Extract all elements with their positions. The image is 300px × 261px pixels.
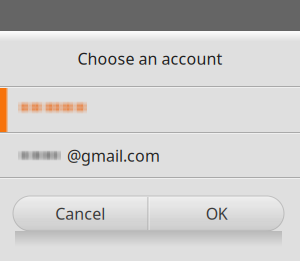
button[interactable]: OK <box>149 196 284 231</box>
staticText: OK <box>206 203 228 224</box>
staticText: @gmail.com <box>67 145 160 166</box>
button[interactable]: @gmail.com <box>0 134 300 177</box>
staticText: Cancel <box>55 203 105 224</box>
button[interactable]: Cancel <box>13 196 147 231</box>
button[interactable] <box>0 88 300 132</box>
staticText: Choose an account <box>77 48 222 69</box>
